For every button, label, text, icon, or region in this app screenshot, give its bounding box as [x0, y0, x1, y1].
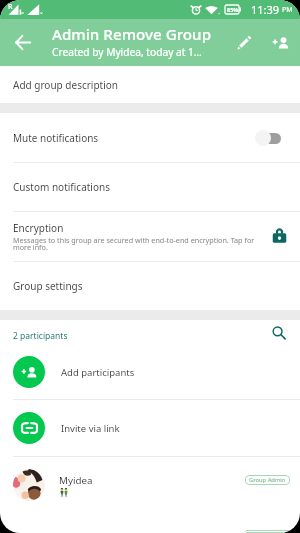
- staticText: Group settings: [13, 279, 83, 293]
- button[interactable]: Add group description: [0, 66, 300, 103]
- staticText: Myidea: [59, 474, 93, 487]
- staticText: Group Admin: [249, 476, 286, 484]
- staticText: R: [8, 2, 13, 12]
- button[interactable]: Add participant: [262, 19, 300, 66]
- button[interactable]: Custom notifications: [0, 163, 300, 211]
- button[interactable]: Edit: [226, 19, 262, 66]
- staticText: 👬: [59, 488, 69, 497]
- staticText: Custom notifications: [13, 180, 110, 194]
- button[interactable]: Invite via link: [0, 400, 300, 456]
- staticText: Messages to this group are secured with …: [13, 235, 260, 253]
- staticText: Admin Remove Group: [52, 24, 212, 45]
- button[interactable]: Myidea: [0, 457, 300, 513]
- button[interactable]: Back: [0, 19, 46, 66]
- button[interactable]: Search: [268, 322, 290, 344]
- staticText: 2 participants: [13, 330, 68, 342]
- staticText: Created by Myidea, today at 1…: [52, 45, 202, 59]
- button[interactable]: Mute notifications: [0, 113, 300, 162]
- staticText: Add participants: [61, 366, 135, 379]
- staticText: Encryption: [13, 221, 64, 235]
- staticText: Invite via link: [61, 422, 120, 435]
- button[interactable]: Encryption: [0, 212, 300, 261]
- staticText: Mute notifications: [13, 131, 99, 145]
- staticText: 11:39: [251, 2, 280, 17]
- button[interactable]: Group settings: [0, 262, 300, 310]
- staticText: PM: [282, 5, 293, 15]
- staticText: 85%: [227, 6, 239, 13]
- button[interactable]: Add participants: [0, 345, 300, 399]
- button[interactable]: Group Admin: [0, 513, 300, 533]
- staticText: Add group description: [13, 78, 119, 92]
